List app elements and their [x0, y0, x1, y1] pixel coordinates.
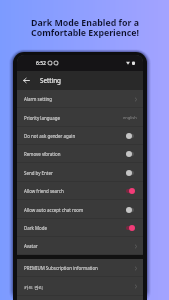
staticText: Setting	[40, 76, 61, 85]
staticText: Alarm setting	[24, 96, 53, 102]
button[interactable]: Dark Mode	[17, 219, 143, 237]
staticText: 카드 관리	[24, 284, 43, 290]
staticText: Remove vibration	[24, 151, 61, 157]
button[interactable]: Avatar	[17, 237, 143, 255]
staticText: Dark Mode Enabled for a Comfortable Expe…	[31, 17, 139, 38]
staticText: Dark Mode	[24, 225, 48, 231]
button[interactable]: Alarm setting	[17, 90, 143, 108]
staticText: Allow auto accept chat room	[24, 207, 84, 213]
staticText: english	[123, 115, 137, 120]
staticText: Avatar	[24, 243, 38, 249]
staticText: Priority language	[24, 115, 60, 121]
staticText: PREMIUM Subscription information	[24, 265, 98, 271]
button[interactable]: PREMIUM Subscription information	[17, 259, 143, 277]
button[interactable]: Send by Enter	[17, 163, 143, 182]
button[interactable]: Priority language	[17, 108, 143, 127]
button[interactable]: Back	[20, 74, 33, 87]
staticText: Allow friend search	[24, 188, 64, 194]
staticText: Send by Enter	[24, 170, 53, 176]
staticText: 6:52	[36, 60, 46, 67]
button[interactable]: Remove vibration	[17, 145, 143, 163]
button[interactable]: Allow friend search	[17, 182, 143, 200]
staticText: Do not ask gender again	[24, 133, 76, 139]
button[interactable]: Allow auto accept chat room	[17, 200, 143, 219]
button[interactable]: 카드 관리	[17, 277, 143, 296]
button[interactable]: Do not ask gender again	[17, 127, 143, 145]
